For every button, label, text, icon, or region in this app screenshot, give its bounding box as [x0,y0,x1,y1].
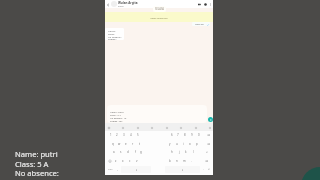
button[interactable]: Shift [108,159,112,163]
staticText: ⌫ [207,134,211,137]
staticText: ⌫ [207,143,211,146]
button[interactable]: 1 [108,131,114,139]
staticText: 5 [137,133,139,137]
staticText: ↵ [208,168,211,171]
button[interactable]: Keyboard tool [136,126,139,129]
staticText: Kelas : [108,32,116,35]
staticText: b [169,159,171,163]
button[interactable]: j [176,148,182,156]
button[interactable]: Send [208,117,213,122]
staticText: d [127,150,129,154]
button[interactable]: k [183,148,189,156]
button[interactable]: p [194,140,200,148]
button[interactable]: SELASA [155,7,164,11]
staticText: l [193,150,194,154]
button[interactable]: q [110,140,116,148]
button[interactable]: n [174,157,180,165]
staticText: , [117,167,118,171]
button[interactable]: 0 [196,131,202,139]
button[interactable]: Video call [196,1,202,7]
button[interactable]: ↵ [204,148,210,156]
button[interactable]: hallo bu [192,22,210,26]
button[interactable]: ⌫ [206,131,212,139]
button[interactable]: e [123,140,129,148]
button[interactable]: , [114,165,120,173]
staticText: Subjek : [108,37,117,40]
staticText: i [183,142,184,146]
staticText: Kelas : 5 A [110,114,121,117]
staticText: e [125,142,127,146]
staticText: 7 [177,133,179,137]
button[interactable]: i [180,140,186,148]
button[interactable]: y [167,140,173,148]
staticText: . [203,167,204,171]
button[interactable]: Voice call [202,1,208,7]
button[interactable]: 4 [128,131,134,139]
button[interactable]: z [113,157,119,165]
button[interactable]: g [138,148,144,156]
button[interactable]: r [130,140,136,148]
button[interactable]: Ketuk untuk info [105,12,213,22]
button[interactable]: Keyboard tool [208,126,211,129]
staticText: j [179,150,180,154]
button[interactable]: m [181,157,187,165]
button[interactable]: Keyboard tool [179,126,182,129]
staticText: Subjek : IPA [110,120,123,123]
button[interactable]: a [111,148,117,156]
staticText: w [118,142,121,146]
button[interactable]: ?123 [107,165,113,173]
staticText: ?123 [108,168,113,171]
button[interactable]: 3 [121,131,127,139]
button[interactable]: Keyboard tool [194,126,197,129]
button[interactable]: 8 [182,131,188,139]
button[interactable]: l [190,148,196,156]
button[interactable]: 2 [114,131,120,139]
button[interactable]: h [169,148,175,156]
button[interactable]: Space [165,166,200,173]
staticText: 3 [123,133,125,137]
button[interactable]: f [132,148,138,156]
button[interactable]: o [187,140,193,148]
button[interactable]: 5 [135,131,141,139]
button[interactable]: Keyboard tool [150,126,153,129]
staticText: v [136,159,138,163]
staticText: a [113,150,115,154]
button[interactable]: ⌫ [204,157,210,165]
staticText: x [122,159,124,163]
staticText: ↵ [206,151,209,154]
staticText: No absence: [15,168,59,178]
button[interactable]: Space [121,166,151,173]
staticText: 4 [130,133,132,137]
button[interactable]: c [127,157,133,165]
button[interactable]: Keyboard tool [121,126,124,129]
staticText: Class: 5 A [15,159,49,169]
button[interactable]: v [134,157,140,165]
staticText: Ketuk untuk info [150,17,168,20]
button[interactable]: s [118,148,124,156]
staticText: No absensi : [108,35,122,38]
button[interactable]: Back [106,3,109,6]
button[interactable]: u [174,140,180,148]
button[interactable]: 6 [169,131,175,139]
button[interactable]: d [125,148,131,156]
button[interactable]: ↵ [206,165,212,173]
button[interactable]: Keyboard tool [107,126,110,129]
button[interactable]: t [137,140,143,148]
staticText: 8 [184,133,186,137]
button[interactable]: Nama : [105,28,124,40]
button[interactable] [107,105,207,123]
button[interactable]: b [167,157,173,165]
button[interactable]: 7 [175,131,181,139]
staticText: Nama : [108,29,116,32]
button[interactable]: w [116,140,122,148]
button[interactable]: 9 [189,131,195,139]
staticText: s [120,150,122,154]
staticText: 6 [171,133,173,137]
button[interactable]: More options [208,2,213,7]
button[interactable]: x [120,157,126,165]
button[interactable]: ⌫ [206,140,212,148]
button[interactable]: Keyboard tool [165,126,168,129]
staticText: f [135,150,136,154]
